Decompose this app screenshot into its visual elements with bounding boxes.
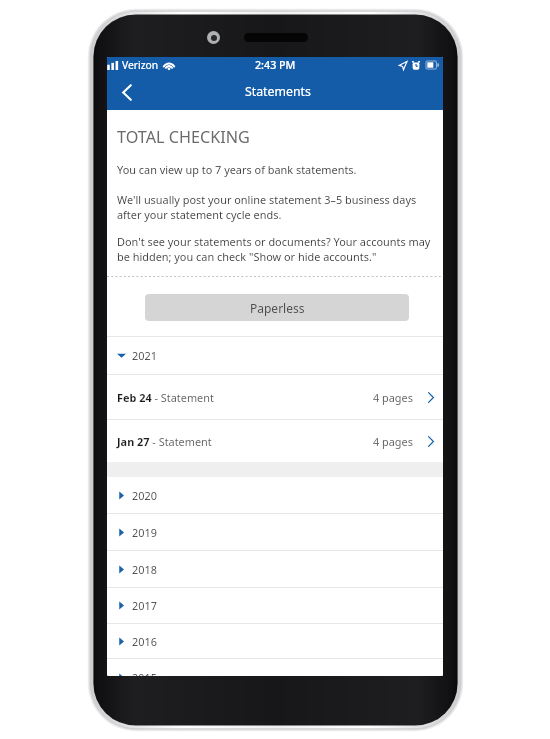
button[interactable]: 2018 — [107, 551, 443, 587]
staticText: 2017 — [132, 598, 157, 613]
staticText: 2018 — [132, 562, 157, 577]
button[interactable]: Feb 24 - Statement — [107, 375, 443, 419]
staticText: 2:43 PM — [255, 58, 296, 73]
button[interactable]: 2019 — [107, 514, 443, 550]
staticText: 2021 — [132, 348, 157, 363]
staticText: 2019 — [132, 525, 157, 540]
staticText: Statements — [245, 83, 311, 100]
staticText: We'll usually post your online statement… — [117, 192, 417, 222]
staticText: 4 pages — [373, 390, 413, 405]
staticText: 2016 — [132, 634, 157, 649]
staticText: You can view up to 7 years of bank state… — [117, 162, 357, 177]
staticText: Feb 24 - Statement — [117, 390, 214, 405]
staticText: TOTAL CHECKING — [117, 126, 250, 148]
button[interactable]: 2015 — [107, 659, 443, 676]
button[interactable]: 2017 — [107, 588, 443, 623]
staticText: Don't see your statements or documents? … — [117, 234, 431, 264]
staticText: 2020 — [132, 488, 157, 503]
button[interactable]: Paperless — [145, 294, 409, 321]
button[interactable]: Back — [113, 78, 141, 106]
button[interactable]: 2021 — [107, 337, 443, 374]
button[interactable]: Jan 27 - Statement — [107, 420, 443, 462]
staticText: Paperless — [250, 300, 305, 316]
staticText: 4 pages — [373, 434, 413, 449]
button[interactable]: 2016 — [107, 624, 443, 658]
staticText: Verizon — [122, 58, 159, 72]
staticText: 2015 — [132, 670, 157, 676]
button[interactable]: 2020 — [107, 477, 443, 513]
staticText: Jan 27 - Statement — [117, 434, 212, 449]
